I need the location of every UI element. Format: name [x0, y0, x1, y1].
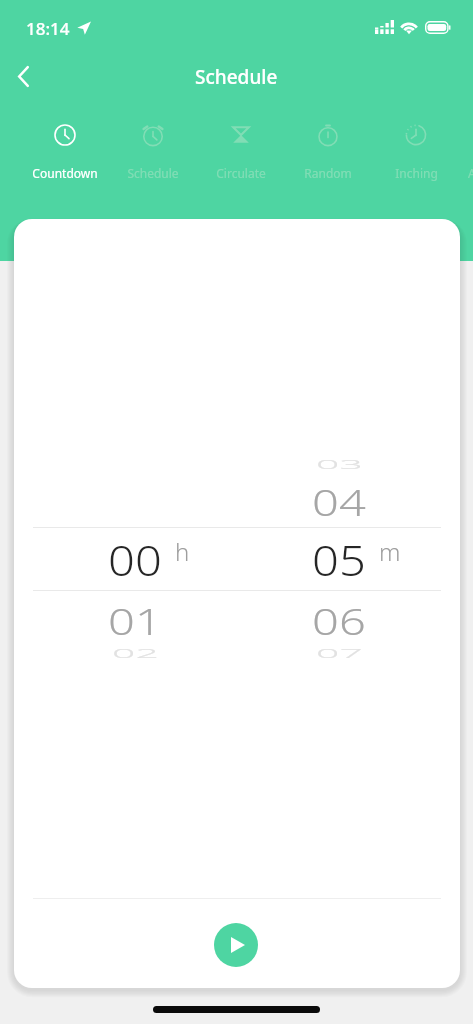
staticText: 06	[312, 596, 366, 645]
button[interactable]: Minutes	[237, 440, 441, 675]
button[interactable]: Back	[1, 54, 45, 98]
staticText: Schedule	[195, 64, 278, 90]
button[interactable]: Random	[284, 120, 372, 181]
button[interactable]: Start timer	[214, 923, 258, 967]
button[interactable]: Circulate	[197, 120, 285, 181]
button[interactable]: Hours	[33, 440, 237, 675]
staticText: m	[379, 535, 401, 568]
staticText: Random	[304, 165, 352, 181]
staticText: 07	[316, 645, 363, 661]
staticText: 18:14	[26, 17, 70, 40]
staticText: Schedule	[127, 165, 179, 181]
staticText: 03	[316, 456, 363, 472]
staticText: 04	[312, 477, 366, 526]
staticText: 01	[108, 596, 162, 645]
staticText: Circulate	[216, 165, 266, 181]
staticText: A	[468, 165, 473, 180]
button[interactable]: Countdown	[21, 120, 109, 181]
staticText: Countdown	[32, 165, 98, 181]
staticText: 00	[108, 531, 162, 588]
button[interactable]: Inching	[372, 120, 460, 181]
staticText: 02	[112, 645, 159, 661]
button[interactable]: More modes	[462, 120, 473, 180]
button[interactable]: Schedule	[109, 120, 197, 181]
staticText: 05	[312, 531, 366, 588]
staticText: Inching	[395, 165, 438, 181]
staticText: h	[175, 535, 190, 568]
